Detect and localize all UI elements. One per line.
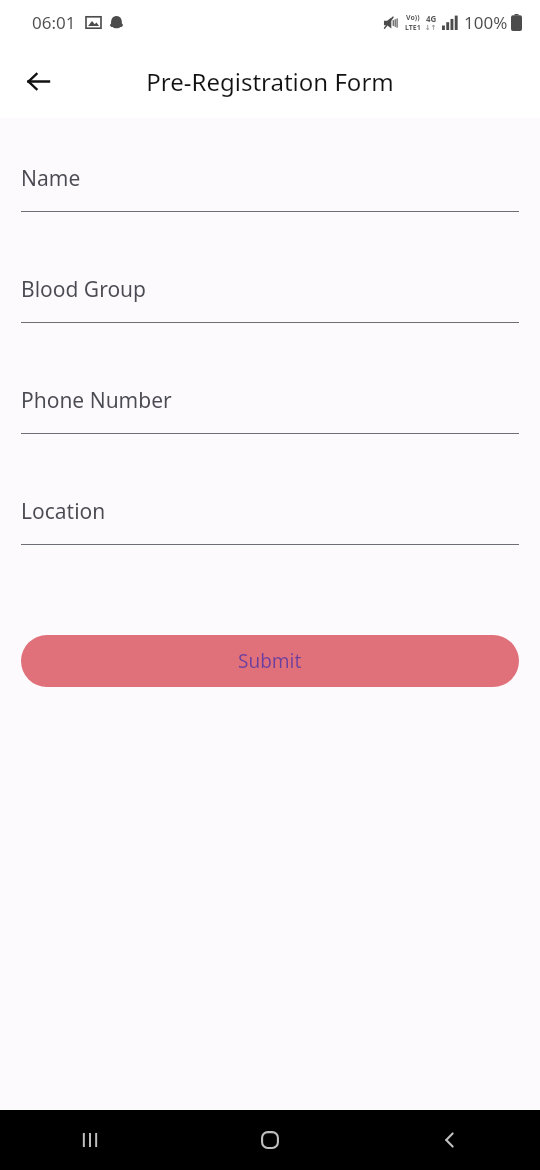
staticText: ↓↑	[425, 24, 437, 32]
staticText: Name	[21, 164, 81, 193]
button[interactable]: Home	[180, 1110, 360, 1170]
button[interactable]: Name	[0, 164, 540, 275]
staticText: Blood Group	[21, 275, 146, 304]
staticText: Vo))	[406, 13, 420, 23]
button[interactable]: Location	[0, 497, 540, 608]
staticText: Phone Number	[21, 386, 172, 415]
staticText: Pre-Registration Form	[146, 65, 394, 98]
staticText: 100%	[464, 11, 508, 34]
staticText: Location	[21, 497, 106, 526]
button[interactable]: Phone Number	[0, 386, 540, 497]
button[interactable]: Submit	[21, 635, 519, 687]
staticText: 06:01	[32, 11, 76, 34]
button[interactable]: Recent apps	[0, 1110, 180, 1170]
button[interactable]: Back	[360, 1110, 540, 1170]
staticText: LTE1	[405, 23, 421, 33]
staticText: 4G	[426, 13, 437, 24]
button[interactable]: Back	[14, 57, 62, 105]
button[interactable]: Blood Group	[0, 275, 540, 386]
staticText: Submit	[238, 648, 302, 674]
